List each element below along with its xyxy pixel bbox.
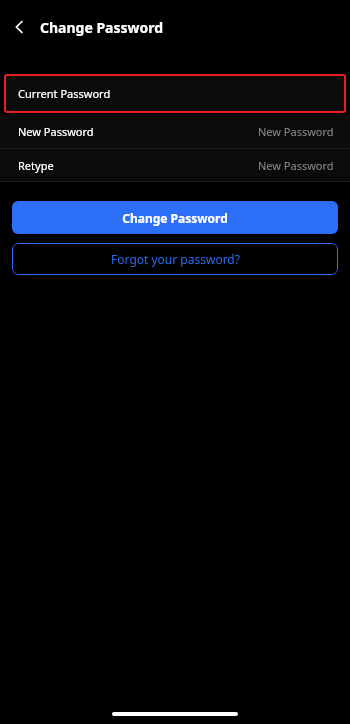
staticText: New Password — [258, 158, 334, 173]
staticText: Forgot your password? — [111, 251, 240, 267]
button[interactable]: Retype — [0, 149, 350, 181]
staticText: Retype — [18, 158, 54, 173]
staticText: Change Password — [122, 210, 228, 226]
staticText: New Password — [18, 124, 94, 139]
staticText: Change Password — [40, 18, 164, 37]
button[interactable]: Forgot your password? — [12, 243, 338, 275]
button[interactable]: Current Password — [4, 74, 346, 113]
button[interactable]: New Password — [0, 114, 350, 148]
staticText: Current Password — [18, 86, 111, 101]
staticText: New Password — [258, 124, 334, 139]
button[interactable]: Change Password — [12, 201, 338, 234]
button[interactable]: Back — [0, 5, 40, 49]
